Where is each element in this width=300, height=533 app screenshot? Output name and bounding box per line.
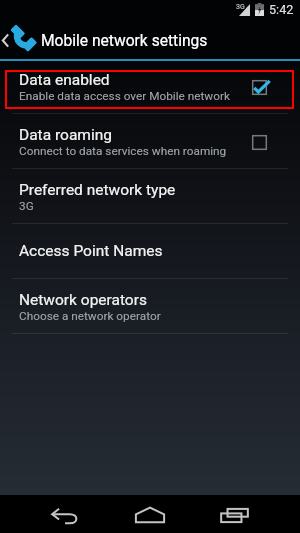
- button[interactable]: Access Point Names: [0, 224, 300, 278]
- button[interactable]: Network operators: [0, 279, 300, 333]
- staticText: Access Point Names: [19, 242, 163, 260]
- staticText: Preferred network type: [19, 181, 176, 199]
- staticText: Network operators: [19, 291, 147, 309]
- staticText: 5:42: [269, 2, 294, 17]
- button[interactable]: Home: [135, 507, 165, 523]
- staticText: Mobile network settings: [41, 32, 208, 50]
- staticText: Data enabled: [19, 71, 110, 89]
- staticText: Choose a network operator: [19, 309, 161, 323]
- staticText: 3G: [236, 3, 245, 11]
- button[interactable]: Data enabled: [0, 59, 300, 113]
- staticText: 3G: [19, 199, 34, 213]
- button[interactable]: Recent apps: [220, 508, 249, 523]
- button[interactable]: Data roaming: [0, 114, 300, 168]
- staticText: Data roaming: [19, 126, 112, 144]
- staticText: Connect to data services when roaming: [19, 144, 227, 158]
- button[interactable]: Preferred network type: [0, 169, 300, 223]
- staticText: Enable data access over Mobile network: [19, 89, 230, 103]
- button[interactable]: Navigate up: Mobile network settings: [0, 22, 300, 59]
- button[interactable]: Back: [51, 507, 78, 524]
